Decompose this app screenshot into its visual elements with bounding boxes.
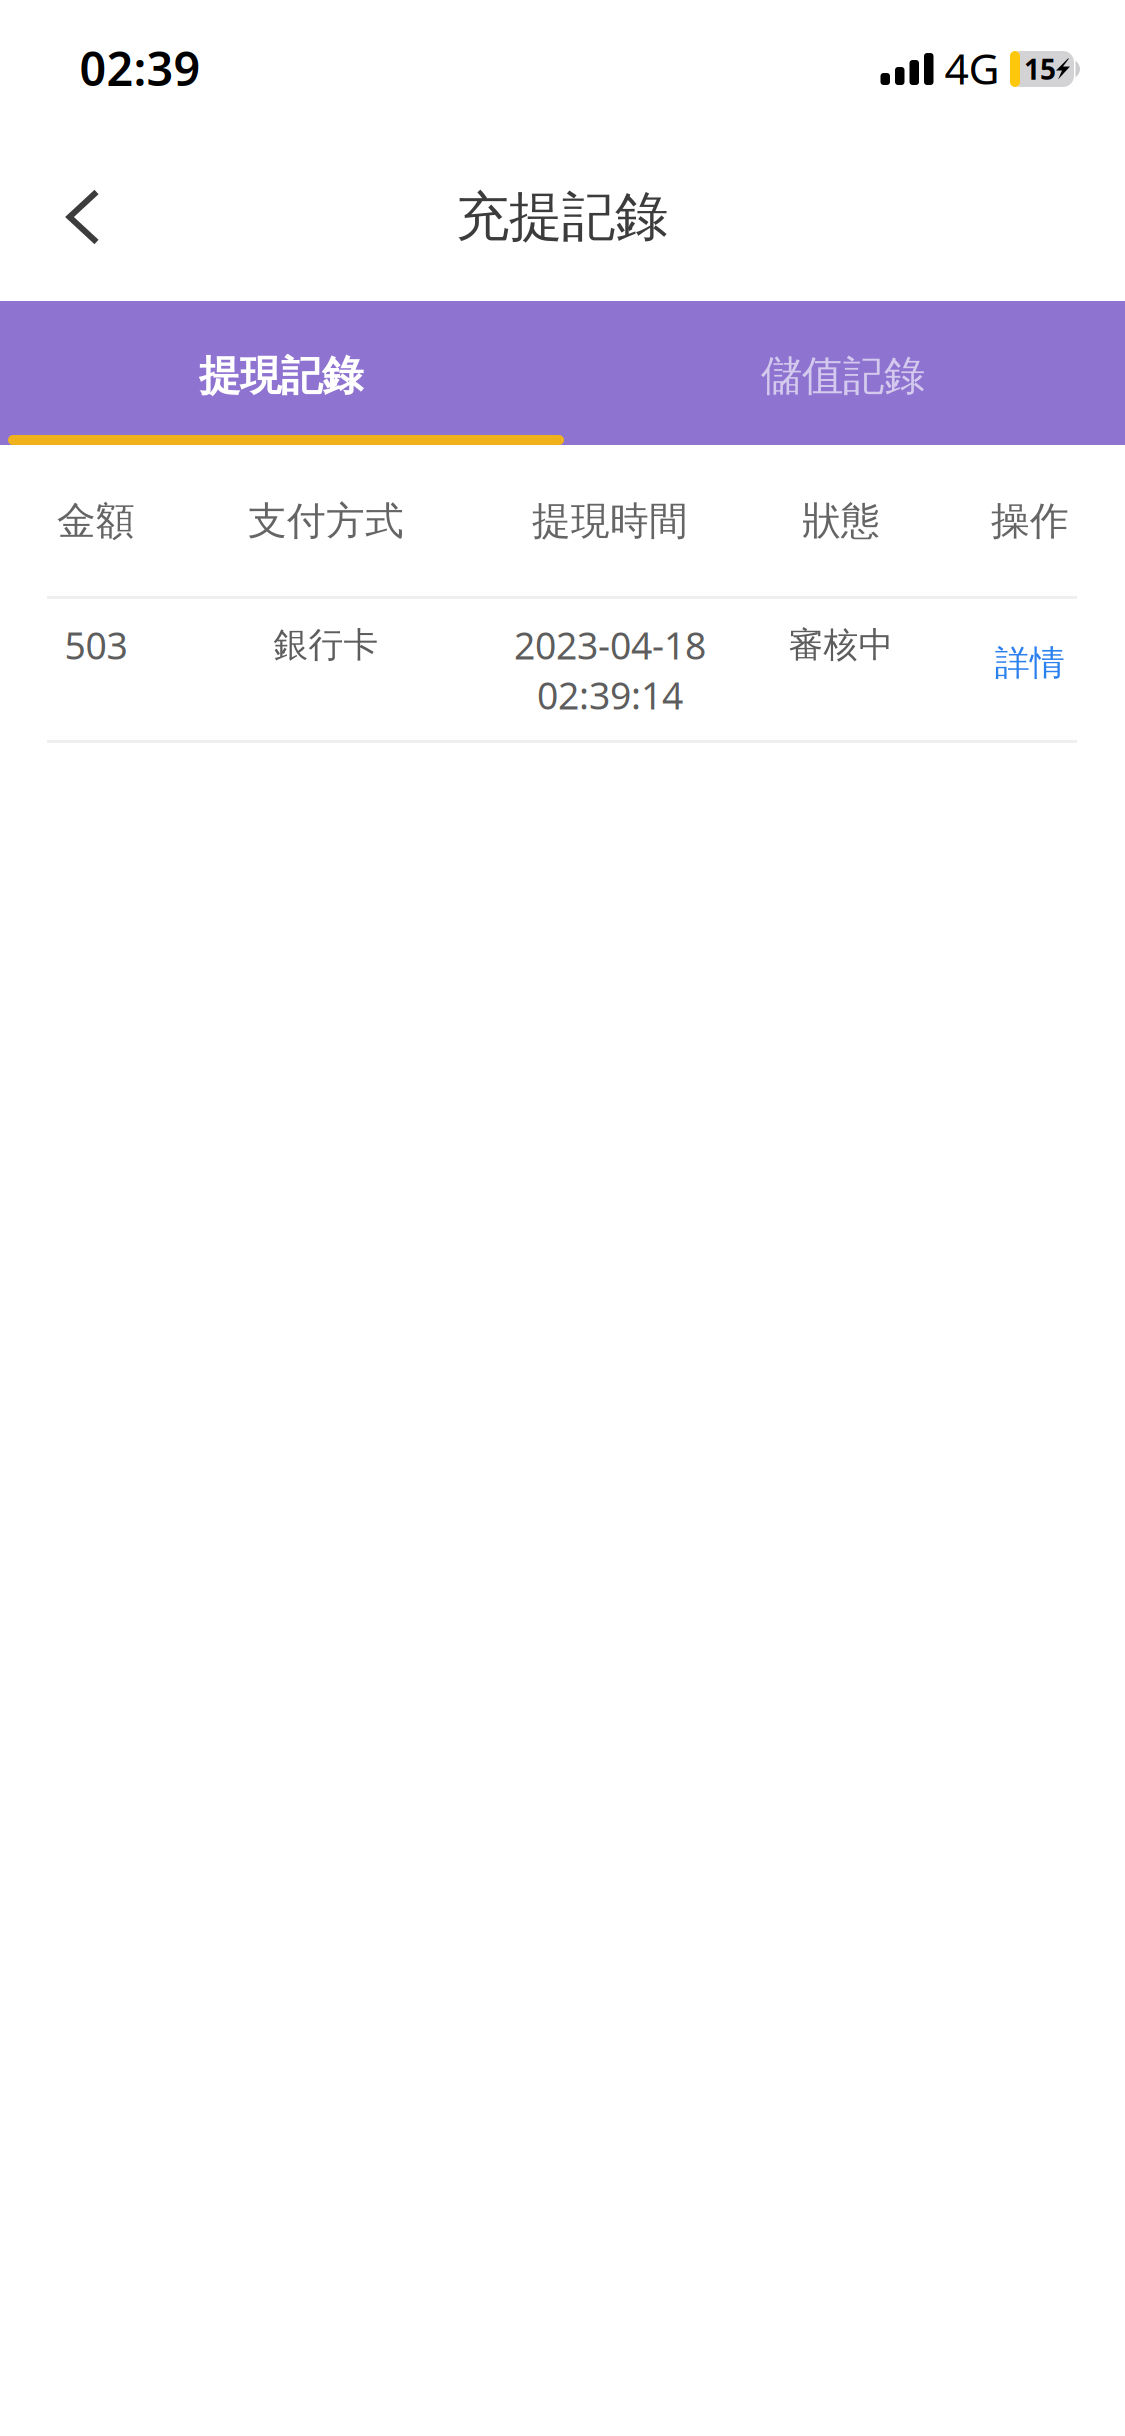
button[interactable]: Back xyxy=(27,161,139,273)
button[interactable]: 儲值記錄 xyxy=(561,301,1124,445)
staticText: 金額 xyxy=(57,497,135,545)
button[interactable]: 詳情 xyxy=(950,599,1110,740)
staticText: 詳情 xyxy=(995,642,1065,684)
staticText: 支付方式 xyxy=(248,497,404,545)
staticText: 儲值記錄 xyxy=(761,351,925,401)
staticText: 4G xyxy=(944,40,999,96)
button[interactable]: 提現記錄 xyxy=(0,301,562,445)
staticText: 狀態 xyxy=(802,497,880,545)
staticText: 02:39:14 xyxy=(537,670,683,720)
staticText: 操作 xyxy=(991,497,1069,545)
staticText: 提現記錄 xyxy=(199,351,363,401)
staticText: 503 xyxy=(64,620,127,670)
staticText: 15 xyxy=(1024,50,1056,88)
staticText: 銀行卡 xyxy=(273,624,378,666)
staticText: 提現時間 xyxy=(532,497,688,545)
staticText: 充提記錄 xyxy=(456,184,668,250)
staticText: 審核中 xyxy=(788,624,893,666)
staticText: 02:39 xyxy=(79,37,200,99)
staticText: 2023-04-18 xyxy=(514,620,706,670)
